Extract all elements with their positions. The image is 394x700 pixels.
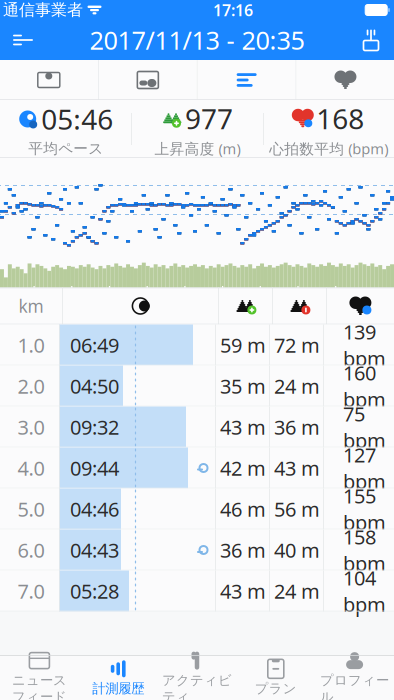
staticText: 24 m [274, 578, 320, 604]
button[interactable]: 2.0 [0, 365, 394, 406]
staticText: 05:28 [70, 578, 119, 604]
staticText: 6.0 [17, 537, 44, 563]
staticText: 心拍数平均 (bpm) [269, 139, 388, 158]
staticText: 158 bpm [343, 523, 386, 576]
staticText: ニュースフィード [12, 672, 67, 700]
staticText: 40 m [274, 537, 320, 563]
staticText: 35 m [220, 373, 266, 399]
staticText: 5 [162, 286, 171, 308]
staticText: 通信事業者 [3, 0, 83, 20]
staticText: 4 [124, 286, 133, 308]
button[interactable]: Share [345, 20, 394, 60]
staticText: 43 m [274, 455, 320, 481]
button[interactable]: プラン [236, 655, 315, 700]
staticText: 42 m [220, 455, 266, 481]
button[interactable]: 4.0 [0, 447, 394, 488]
staticText: 9 [312, 286, 321, 308]
staticText: 56 m [274, 496, 320, 522]
button[interactable]: 計測履歴 [79, 655, 158, 700]
staticText: 3 [86, 286, 95, 308]
staticText: 04:50 [70, 373, 119, 399]
staticText: 上昇高度 (m) [154, 139, 240, 158]
staticText: 155 bpm [343, 482, 386, 535]
staticText: 04:43 [70, 537, 119, 563]
staticText: 平均ペース [28, 140, 103, 158]
staticText: 43 m [220, 578, 266, 604]
button[interactable]: 3.0 [0, 406, 394, 447]
staticText: 4.0 [17, 455, 44, 481]
staticText: 6 [199, 286, 208, 308]
staticText: 計測履歴 [92, 680, 144, 697]
staticText: 8 [275, 286, 284, 308]
staticText: 36 m [274, 414, 320, 440]
staticText: 43 m [220, 414, 266, 440]
staticText: 3.0 [17, 414, 44, 440]
button[interactable]: Heart rate [296, 60, 394, 100]
staticText: 1 [11, 286, 20, 308]
button[interactable]: Back [0, 20, 49, 60]
staticText: 139 bpm [343, 318, 386, 371]
staticText: 10 [346, 286, 364, 308]
staticText: 24 m [274, 373, 320, 399]
staticText: 7 [237, 286, 246, 308]
staticText: 17:16 [213, 0, 253, 21]
staticText: 1.0 [17, 332, 44, 358]
button[interactable]: Map [0, 60, 98, 100]
button[interactable]: プロフィール [315, 655, 394, 700]
button[interactable]: 6.0 [0, 529, 394, 570]
staticText: アクティビティ [162, 672, 232, 700]
staticText: 127 bpm [343, 441, 386, 494]
staticText: 168 [316, 100, 364, 137]
button[interactable]: ニュースフィード [0, 655, 79, 700]
button[interactable]: アクティビティ [158, 655, 236, 700]
staticText: プロフィール [320, 672, 389, 700]
staticText: 75 bpm [343, 400, 386, 453]
staticText: 2.0 [17, 373, 44, 399]
staticText: 09:32 [70, 414, 119, 440]
staticText: 2017/11/13 - 20:35 [89, 23, 304, 57]
staticText: プラン [255, 680, 297, 697]
staticText: 05:46 [41, 100, 113, 138]
button[interactable]: Photos [99, 60, 197, 100]
staticText: 977 [185, 100, 233, 137]
staticText: 2 [48, 286, 57, 308]
staticText: 46 m [220, 496, 266, 522]
button[interactable]: 7.0 [0, 570, 394, 611]
staticText: km [18, 294, 43, 317]
staticText: 104 bpm [343, 564, 386, 617]
button[interactable]: Splits [198, 60, 296, 100]
staticText: 5.0 [17, 496, 44, 522]
button[interactable]: 1.0 [0, 324, 394, 365]
staticText: 7.0 [17, 578, 44, 604]
staticText: 72 m [274, 332, 320, 358]
button[interactable]: 5.0 [0, 488, 394, 529]
staticText: 36 m [220, 537, 266, 563]
staticText: 160 bpm [343, 359, 386, 412]
staticText: 04:46 [70, 496, 119, 522]
staticText: 59 m [220, 332, 266, 358]
staticText: 06:49 [70, 332, 119, 358]
staticText: 09:44 [70, 455, 119, 481]
